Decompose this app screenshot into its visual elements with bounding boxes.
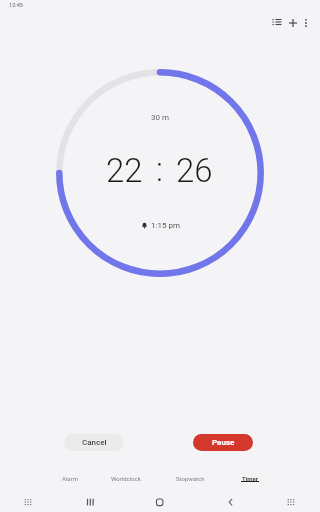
button[interactable]: Timer xyxy=(232,470,268,487)
button[interactable]: Stopwatch xyxy=(167,470,213,487)
staticText: Cancel xyxy=(82,438,107,447)
staticText: 1:15 pm xyxy=(151,221,180,230)
button[interactable] xyxy=(21,495,36,509)
button[interactable]: Cancel xyxy=(64,434,124,451)
button[interactable] xyxy=(270,15,284,29)
button[interactable] xyxy=(152,495,167,509)
button[interactable] xyxy=(83,495,98,509)
staticText: 22 xyxy=(106,151,143,190)
staticText: Pause xyxy=(212,438,235,447)
staticText: 30 m xyxy=(151,113,169,122)
staticText: 12:45 xyxy=(9,2,23,8)
staticText: Stopwatch xyxy=(176,475,205,482)
button[interactable] xyxy=(286,16,300,30)
staticText: 26 xyxy=(176,151,213,190)
button[interactable]: Alarm xyxy=(50,470,90,487)
staticText: Worldclock xyxy=(111,475,141,482)
staticText: Alarm xyxy=(62,475,78,482)
button[interactable]: Pause xyxy=(193,434,253,451)
button[interactable] xyxy=(284,495,299,509)
staticText: Timer xyxy=(242,475,258,482)
button[interactable] xyxy=(299,16,313,30)
button[interactable] xyxy=(223,495,238,509)
staticText: : xyxy=(156,150,163,189)
button[interactable]: Worldclock xyxy=(101,470,151,487)
